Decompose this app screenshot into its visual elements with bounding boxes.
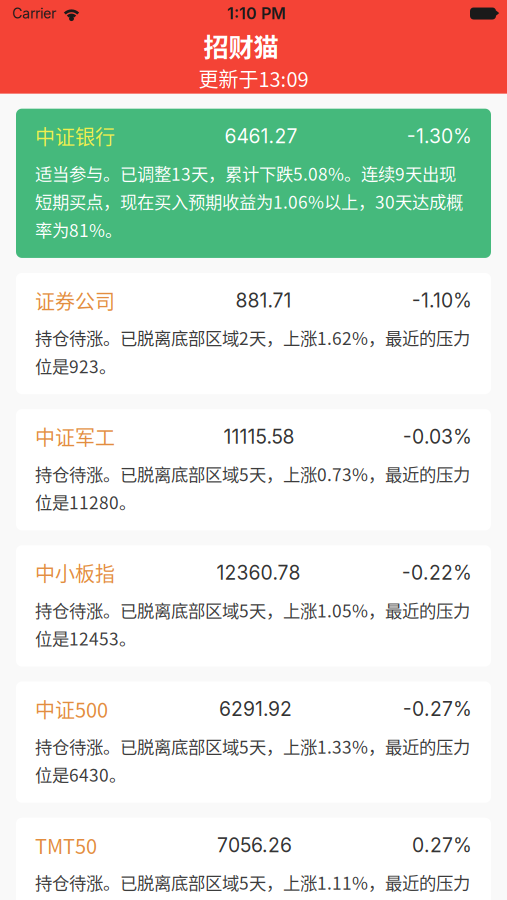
staticText: 7056.26: [217, 833, 292, 857]
staticText: 中证银行: [35, 122, 115, 151]
staticText: 12360.78: [216, 561, 300, 584]
staticText: 持仓待涨。已脱离底部区域5天，上涨0.73%，最近的压力位是11280。: [35, 461, 470, 514]
staticText: -1.30%: [407, 124, 472, 148]
staticText: 招财猫: [203, 27, 278, 64]
staticText: 6461.27: [224, 124, 297, 148]
button[interactable]: 中小板指: [16, 545, 491, 666]
staticText: -1.10%: [412, 289, 472, 312]
staticText: 中证500: [35, 695, 108, 724]
staticText: -0.03%: [403, 425, 472, 448]
button[interactable]: TMT50: [16, 818, 491, 900]
staticText: 1:10 PM: [227, 4, 286, 23]
staticText: 持仓待涨。已脱离底部区域5天，上涨1.05%，最近的压力位是12453。: [35, 597, 470, 650]
staticText: TMT50: [35, 831, 97, 860]
button[interactable]: 证券公司: [16, 273, 491, 394]
button[interactable]: 中证银行: [16, 109, 491, 258]
button[interactable]: 中证军工: [16, 409, 491, 530]
staticText: 持仓待涨。已脱离底部区域5天，上涨1.33%，最近的压力位是6430。: [35, 733, 470, 787]
staticText: 0.27%: [412, 833, 472, 857]
staticText: 881.71: [235, 289, 291, 312]
staticText: 6291.92: [219, 697, 292, 721]
staticText: 证券公司: [35, 286, 115, 315]
staticText: -0.22%: [402, 561, 472, 584]
staticText: 适当参与。已调整13天，累计下跌5.08%。连续9天出现短期买点，现在买入预期收…: [35, 161, 463, 242]
button[interactable]: 中证500: [16, 681, 491, 803]
staticText: 中证军工: [35, 422, 115, 451]
staticText: 更新于13:09: [198, 64, 308, 93]
staticText: Carrier: [12, 5, 56, 22]
staticText: -0.27%: [403, 697, 472, 721]
staticText: 持仓待涨。已脱离底部区域5天，上涨1.11%，最近的压力位是7152。: [35, 870, 470, 900]
staticText: 中小板指: [35, 558, 115, 587]
staticText: 11115.58: [223, 425, 294, 448]
staticText: 持仓待涨。已脱离底部区域2天，上涨1.62%，最近的压力位是923。: [35, 325, 470, 378]
